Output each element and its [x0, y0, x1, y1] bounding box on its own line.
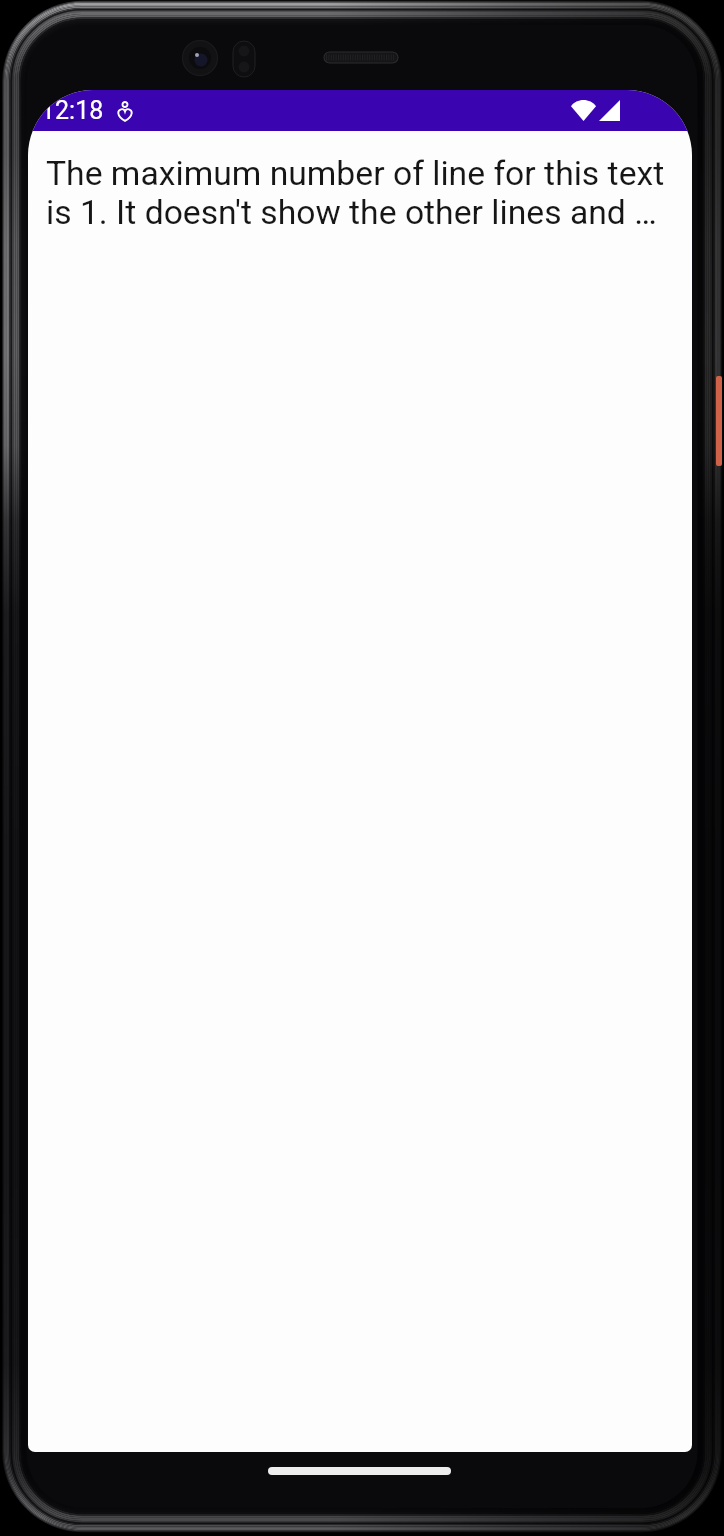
other: Wi-Fi — [571, 100, 596, 121]
button[interactable]: The maximum number of line for this text… — [28, 131, 692, 232]
button[interactable]: Home gesture handle — [268, 1467, 451, 1475]
staticText: 12:18 — [41, 96, 104, 125]
other: Safety status — [118, 101, 132, 121]
other: Mobile signal — [599, 100, 620, 121]
